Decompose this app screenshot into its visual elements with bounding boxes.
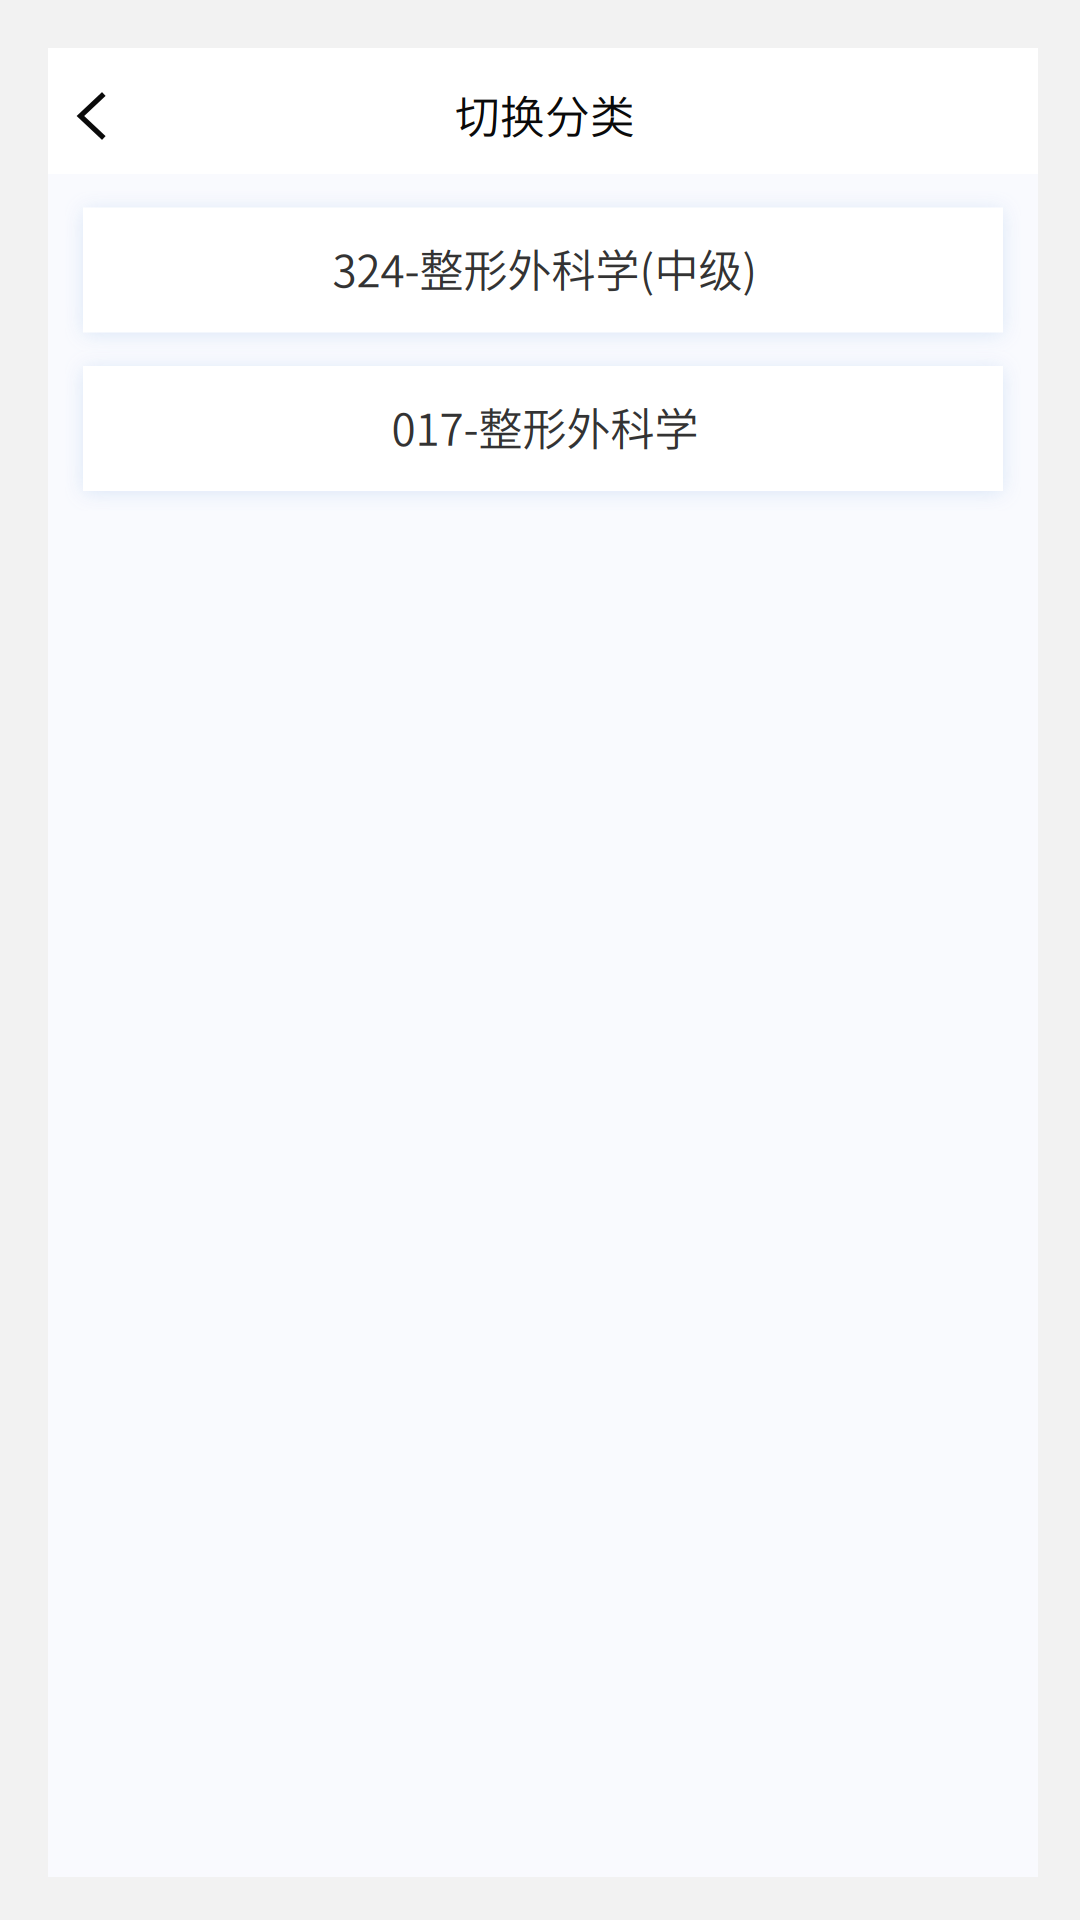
- staticText: 切换分类: [455, 82, 635, 146]
- button[interactable]: 324-整形外科学(中级): [83, 207, 1003, 332]
- button[interactable]: Back: [48, 48, 168, 174]
- staticText: 017-整形外科学: [391, 395, 698, 458]
- staticText: 324-整形外科学(中级): [332, 236, 757, 300]
- button[interactable]: 017-整形外科学: [83, 366, 1003, 491]
